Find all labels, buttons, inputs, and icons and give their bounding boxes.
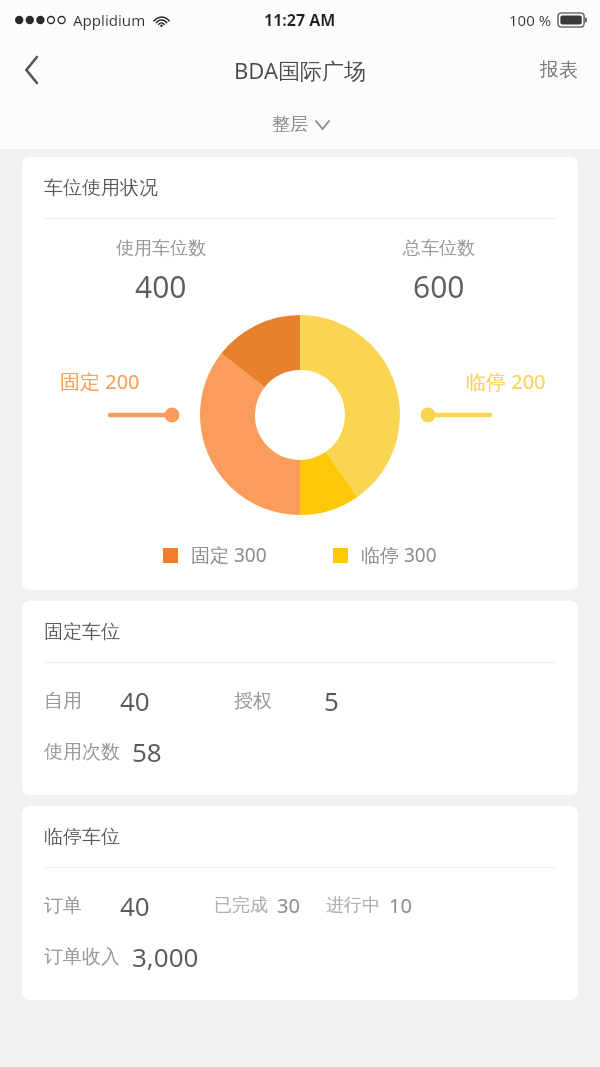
staticText: 车位使用状况 xyxy=(44,176,158,200)
staticText: 40 xyxy=(120,888,150,923)
staticText: 400 xyxy=(135,266,187,307)
staticText: 30 xyxy=(277,892,300,919)
staticText: 订单收入 xyxy=(44,945,120,969)
staticText: 报表 xyxy=(540,58,578,82)
button[interactable]: 整层 xyxy=(260,107,341,142)
staticText: 进行中 xyxy=(326,894,380,917)
staticText: 5 xyxy=(324,683,339,718)
staticText: 临停车位 xyxy=(44,825,120,849)
button[interactable]: 报表 xyxy=(518,40,600,100)
staticText: 授权 xyxy=(234,689,272,713)
staticText: 40 xyxy=(120,683,150,718)
staticText: 600 xyxy=(413,266,465,307)
button[interactable]: 车位使用状况 xyxy=(22,157,578,590)
button[interactable]: 临停车位 xyxy=(22,806,578,1000)
staticText: 10 xyxy=(389,892,412,919)
staticText: 总车位数 xyxy=(403,237,475,260)
staticText: 11:27 AM xyxy=(264,9,336,31)
button[interactable]: 固定车位 xyxy=(22,601,578,795)
staticText: 3,000 xyxy=(132,939,199,974)
staticText: 100 % xyxy=(509,10,552,30)
staticText: 临停 300 xyxy=(361,542,437,568)
staticText: 固定 300 xyxy=(191,542,267,568)
staticText: 使用次数 xyxy=(44,740,120,764)
staticText: Applidium xyxy=(73,10,146,30)
staticText: BDA国际广场 xyxy=(234,55,366,85)
button[interactable]: Back xyxy=(0,40,64,100)
staticText: 整层 xyxy=(272,113,308,136)
staticText: 已完成 xyxy=(214,894,268,917)
staticText: 自用 xyxy=(44,689,82,713)
staticText: 固定车位 xyxy=(44,620,120,644)
staticText: 订单 xyxy=(44,894,82,918)
staticText: 使用车位数 xyxy=(116,237,206,260)
staticText: 58 xyxy=(132,734,162,769)
staticText: 临停 200 xyxy=(466,368,546,395)
staticText: 固定 200 xyxy=(60,368,140,395)
